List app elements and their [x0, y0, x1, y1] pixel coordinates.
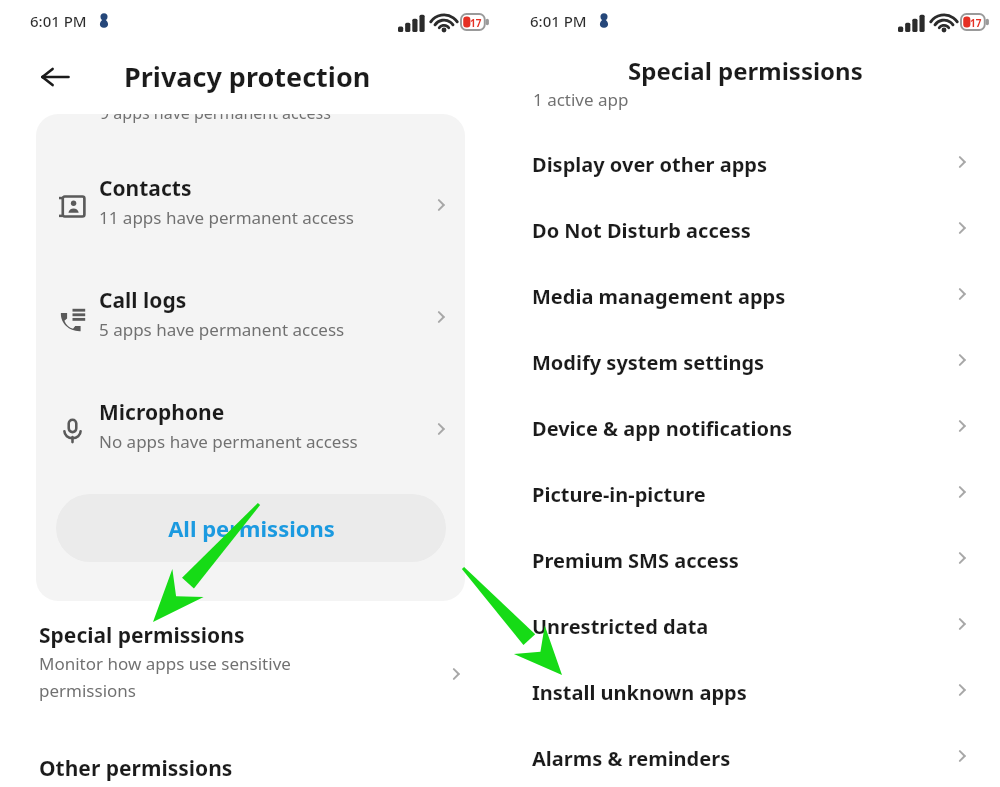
button[interactable]: Special permissions: [0, 612, 500, 722]
staticText: 6:01 PM: [530, 11, 587, 31]
button[interactable]: Display over other apps: [500, 140, 1000, 200]
staticText: Other permissions: [39, 754, 233, 783]
staticText: 11 apps have permanent access: [99, 206, 354, 229]
button[interactable]: Other permissions: [0, 745, 500, 787]
staticText: Picture-in-picture: [532, 481, 706, 508]
staticText: 1 active app: [533, 88, 629, 111]
button[interactable]: Install unknown apps: [500, 668, 1000, 728]
button[interactable]: Picture-in-picture: [500, 470, 1000, 530]
button[interactable]: Do Not Disturb access: [500, 206, 1000, 266]
staticText: 17: [470, 16, 482, 30]
staticText: Do Not Disturb access: [532, 217, 751, 244]
button[interactable]: All permissions: [56, 494, 446, 562]
button[interactable]: Alarms & reminders: [500, 734, 1000, 787]
staticText: Unrestricted data: [532, 613, 709, 640]
staticText: Modify system settings: [532, 349, 765, 376]
staticText: Display over other apps: [532, 151, 768, 178]
staticText: All permissions: [168, 513, 335, 543]
staticText: Call logs: [99, 286, 187, 315]
button[interactable]: Back: [33, 55, 77, 99]
staticText: 17: [970, 16, 982, 30]
staticText: Special permissions: [628, 54, 863, 87]
staticText: Contacts: [99, 174, 192, 203]
button[interactable]: Media management apps: [500, 272, 1000, 332]
button[interactable]: Modify system settings: [500, 338, 1000, 398]
staticText: 6:01 PM: [30, 11, 87, 31]
staticText: Privacy protection: [124, 58, 371, 95]
staticText: Special permissions: [39, 621, 245, 650]
staticText: Premium SMS access: [532, 547, 739, 574]
staticText: permissions: [39, 679, 136, 702]
button[interactable]: Device & app notifications: [500, 404, 1000, 464]
staticText: 5 apps have permanent access: [99, 318, 345, 341]
staticText: Alarms & reminders: [532, 745, 731, 772]
button[interactable]: Call logs: [36, 268, 465, 368]
staticText: Media management apps: [532, 283, 786, 310]
button[interactable]: Microphone: [36, 380, 465, 480]
staticText: Install unknown apps: [532, 679, 747, 706]
staticText: Monitor how apps use sensitive: [39, 652, 291, 675]
staticText: Device & app notifications: [532, 415, 793, 442]
staticText: No apps have permanent access: [99, 430, 358, 453]
button[interactable]: Premium SMS access: [500, 536, 1000, 596]
staticText: 9 apps have permanent access: [100, 114, 331, 124]
staticText: Microphone: [99, 398, 225, 427]
button[interactable]: Unrestricted data: [500, 602, 1000, 662]
button[interactable]: Contacts: [36, 156, 465, 256]
